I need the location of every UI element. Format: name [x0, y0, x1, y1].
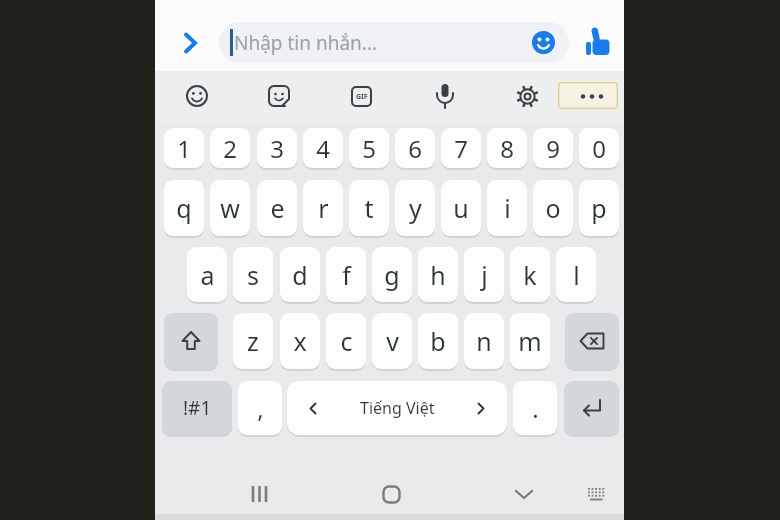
- button[interactable]: [184, 33, 198, 53]
- button[interactable]: [565, 313, 619, 369]
- staticText: x: [293, 324, 307, 358]
- button[interactable]: [587, 487, 606, 502]
- button[interactable]: 9: [533, 128, 573, 168]
- button[interactable]: [516, 85, 539, 108]
- staticText: 2: [223, 132, 237, 165]
- staticText: Tiếng Việt: [360, 397, 435, 419]
- button[interactable]: GIF: [351, 86, 372, 107]
- staticText: t: [364, 191, 374, 225]
- staticText: o: [545, 191, 561, 225]
- staticText: v: [386, 324, 399, 358]
- staticText: j: [481, 258, 488, 292]
- staticText: d: [292, 258, 308, 292]
- button[interactable]: [532, 31, 555, 54]
- button[interactable]: 0: [579, 128, 619, 168]
- button[interactable]: Tiếng Việt: [287, 381, 507, 435]
- button[interactable]: v: [372, 313, 412, 369]
- button[interactable]: u: [441, 180, 481, 236]
- button[interactable]: 2: [210, 128, 250, 168]
- staticText: n: [476, 324, 492, 358]
- staticText: Nhập tin nhắn...: [234, 30, 378, 56]
- staticText: b: [430, 324, 446, 358]
- button[interactable]: 1: [164, 128, 204, 168]
- staticText: h: [430, 258, 446, 292]
- button[interactable]: i: [487, 180, 527, 236]
- button[interactable]: !#1: [162, 381, 232, 435]
- staticText: y: [409, 191, 422, 225]
- staticText: 9: [546, 132, 560, 165]
- button[interactable]: .: [513, 381, 557, 435]
- button[interactable]: q: [164, 180, 204, 236]
- staticText: r: [318, 191, 329, 225]
- button[interactable]: k: [510, 247, 550, 302]
- button[interactable]: b: [418, 313, 458, 369]
- staticText: 4: [316, 132, 330, 165]
- button[interactable]: [514, 489, 534, 500]
- button[interactable]: [433, 83, 457, 110]
- staticText: m: [518, 324, 542, 358]
- staticText: q: [176, 191, 192, 225]
- button[interactable]: d: [280, 247, 320, 302]
- staticText: g: [384, 258, 400, 292]
- button[interactable]: l: [556, 247, 596, 302]
- staticText: z: [247, 324, 259, 358]
- button[interactable]: g: [372, 247, 412, 302]
- staticText: GIF: [356, 92, 368, 102]
- button[interactable]: z: [233, 313, 273, 369]
- staticText: 1: [177, 132, 191, 165]
- button[interactable]: 4: [303, 128, 343, 168]
- button[interactable]: j: [464, 247, 504, 302]
- button[interactable]: x: [280, 313, 320, 369]
- button[interactable]: [164, 313, 218, 369]
- button[interactable]: [585, 30, 612, 57]
- staticText: 8: [500, 132, 514, 165]
- button[interactable]: w: [210, 180, 250, 236]
- staticText: f: [342, 258, 351, 292]
- button[interactable]: [268, 85, 290, 107]
- button[interactable]: t: [349, 180, 389, 236]
- staticText: 7: [454, 132, 468, 165]
- staticText: u: [453, 191, 469, 225]
- button[interactable]: [558, 82, 618, 109]
- button[interactable]: 7: [441, 128, 481, 168]
- button[interactable]: [251, 485, 269, 503]
- button[interactable]: o: [533, 180, 573, 236]
- staticText: c: [340, 324, 353, 358]
- staticText: !#1: [183, 395, 212, 421]
- button[interactable]: e: [257, 180, 297, 236]
- button[interactable]: a: [187, 247, 227, 302]
- button[interactable]: y: [395, 180, 435, 236]
- button[interactable]: n: [464, 313, 504, 369]
- button[interactable]: f: [326, 247, 366, 302]
- staticText: 3: [270, 132, 284, 165]
- button[interactable]: Nhập tin nhắn...: [219, 22, 569, 63]
- staticText: w: [220, 191, 240, 225]
- staticText: a: [200, 258, 215, 292]
- button[interactable]: [564, 381, 619, 435]
- button[interactable]: h: [418, 247, 458, 302]
- staticText: .: [532, 392, 539, 425]
- staticText: ,: [257, 392, 264, 425]
- button[interactable]: 6: [395, 128, 435, 168]
- button[interactable]: 3: [257, 128, 297, 168]
- button[interactable]: c: [326, 313, 366, 369]
- button[interactable]: m: [510, 313, 550, 369]
- staticText: s: [247, 258, 259, 292]
- staticText: 0: [592, 132, 606, 165]
- button[interactable]: s: [233, 247, 273, 302]
- button[interactable]: [382, 485, 401, 504]
- button[interactable]: ,: [238, 381, 282, 435]
- staticText: k: [523, 258, 537, 292]
- button[interactable]: r: [303, 180, 343, 236]
- staticText: e: [270, 191, 285, 225]
- button[interactable]: [186, 85, 208, 107]
- staticText: 5: [362, 132, 376, 165]
- button[interactable]: 8: [487, 128, 527, 168]
- staticText: 6: [408, 132, 422, 165]
- staticText: l: [573, 258, 580, 292]
- staticText: i: [504, 191, 511, 225]
- button[interactable]: p: [579, 180, 619, 236]
- button[interactable]: 5: [349, 128, 389, 168]
- staticText: p: [591, 191, 607, 225]
